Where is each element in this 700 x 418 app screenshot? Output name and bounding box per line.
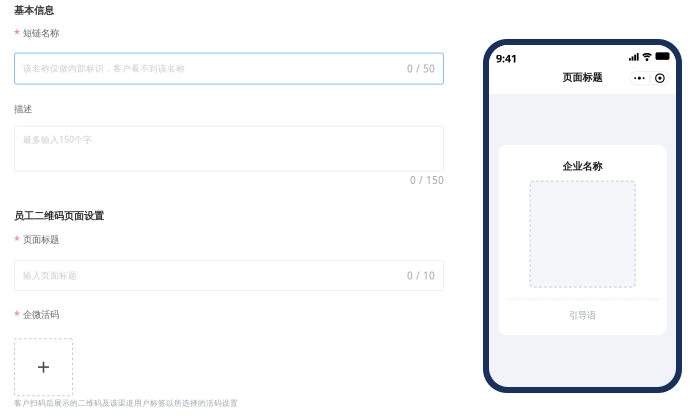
staticText: 0 / 50 [407, 62, 435, 75]
staticText: 客户扫码后展示的二维码及该渠道用户标签以所选择的活码设置 [14, 398, 238, 408]
button[interactable]: 更多与胶囊按钮 [629, 71, 669, 85]
staticText: 最多输入150个字 [23, 134, 92, 145]
staticText: 0 / 150 [410, 173, 444, 187]
staticText: 页面标题 [23, 234, 59, 246]
staticText: 企业名称 [563, 160, 603, 173]
button[interactable]: 最多输入150个字 [14, 126, 444, 172]
staticText: 9:41 [496, 51, 517, 66]
staticText: 输入页面标题 [23, 270, 77, 281]
staticText: 描述 [14, 103, 32, 115]
staticText: 员工二维码页面设置 [14, 210, 104, 222]
staticText: * [14, 26, 20, 40]
staticText: 该名称仅做内部标识，客户看不到该名称 [23, 63, 185, 74]
staticText: * [14, 308, 20, 322]
staticText: 引导语 [569, 310, 596, 321]
button[interactable]: 输入页面标题 [14, 260, 444, 291]
button[interactable]: 该名称仅做内部标识，客户看不到该名称 [14, 53, 444, 85]
staticText: 短链名称 [23, 27, 59, 39]
staticText: 页面标题 [562, 71, 602, 84]
staticText: 0 / 10 [407, 269, 435, 282]
staticText: 基本信息 [14, 4, 54, 17]
staticText: 企微活码 [23, 309, 59, 321]
button[interactable]: 上传企微活码 [14, 338, 73, 396]
staticText: * [14, 233, 20, 247]
